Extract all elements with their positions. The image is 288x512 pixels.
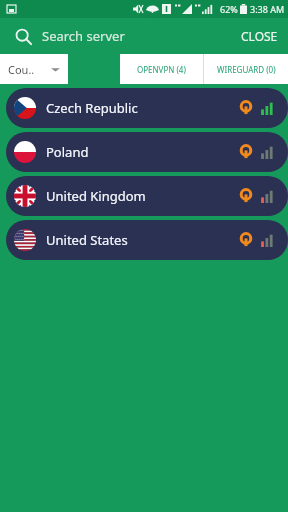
staticText: 62% (220, 3, 238, 15)
staticText: 3:38 AM (250, 3, 285, 15)
button[interactable]: OPENVPN (4) (120, 54, 203, 84)
button[interactable]: Czech Republic (6, 88, 288, 128)
button[interactable]: Search (8, 21, 38, 51)
button[interactable]: CLOSE (231, 18, 288, 54)
staticText: Search server (42, 27, 125, 45)
staticText: Cou.. (8, 62, 35, 77)
staticText: WIREGUARD (0) (217, 64, 276, 75)
button[interactable]: Search server (42, 18, 231, 54)
staticText: United Kingdom (46, 187, 238, 205)
button[interactable]: WIREGUARD (0) (204, 54, 288, 84)
staticText: OPENVPN (4) (137, 64, 186, 75)
staticText: CLOSE (241, 28, 278, 44)
button[interactable]: United Kingdom (6, 176, 288, 216)
staticText: Poland (46, 143, 238, 161)
button[interactable]: United States (6, 220, 288, 260)
staticText: Czech Republic (46, 99, 238, 117)
button[interactable]: Cou.. (0, 54, 68, 84)
button[interactable]: Poland (6, 132, 288, 172)
staticText: United States (46, 231, 238, 249)
